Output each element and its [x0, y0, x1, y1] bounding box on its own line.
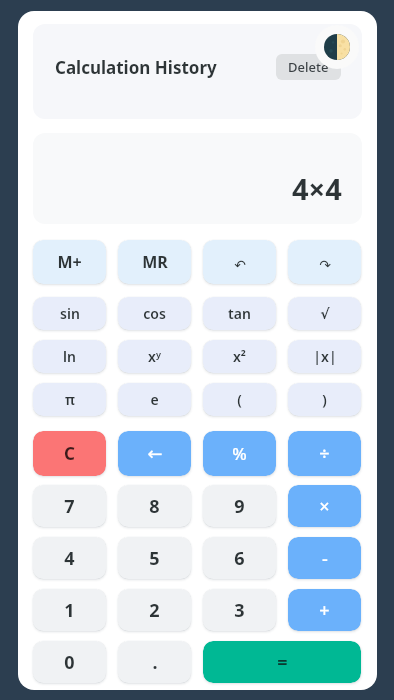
button[interactable]: 0	[33, 641, 106, 683]
staticText: MR	[142, 251, 168, 273]
staticText: ↷	[319, 257, 331, 273]
button[interactable]: 2	[118, 589, 191, 631]
staticText: π	[65, 390, 75, 409]
staticText: 3	[234, 598, 245, 623]
button[interactable]: Undo	[203, 240, 276, 284]
button[interactable]: 5	[118, 537, 191, 579]
button[interactable]: Redo	[288, 240, 361, 284]
button[interactable]: e	[118, 383, 191, 416]
button[interactable]: sin	[33, 297, 106, 330]
button[interactable]: MR	[118, 240, 191, 284]
button[interactable]: 3	[203, 589, 276, 631]
staticText: ÷	[319, 441, 330, 466]
button[interactable]: ←	[118, 431, 191, 476]
button[interactable]: %	[203, 431, 276, 476]
staticText: C	[64, 442, 75, 465]
staticText: =	[277, 650, 288, 675]
staticText: ←	[147, 443, 163, 464]
staticText: x²	[233, 347, 246, 366]
staticText: (	[237, 390, 242, 409]
staticText: Delete	[288, 58, 329, 76]
staticText: M+	[57, 251, 82, 273]
button[interactable]: -	[288, 537, 361, 579]
staticText: 9	[234, 494, 245, 519]
button[interactable]: Toggle theme	[315, 25, 359, 69]
staticText: -	[322, 546, 328, 571]
button[interactable]: x²	[203, 340, 276, 373]
staticText: √	[320, 306, 330, 322]
button[interactable]: π	[33, 383, 106, 416]
staticText: Calculation History	[55, 56, 217, 79]
button[interactable]: ÷	[288, 431, 361, 476]
button[interactable]: √	[288, 297, 361, 330]
staticText: %	[232, 442, 247, 465]
button[interactable]: C	[33, 431, 106, 476]
staticText: cos	[143, 304, 166, 323]
button[interactable]: 6	[203, 537, 276, 579]
button[interactable]: (	[203, 383, 276, 416]
button[interactable]: cos	[118, 297, 191, 330]
staticText: ln	[63, 347, 76, 366]
staticText: 7	[64, 494, 75, 519]
staticText: 2	[149, 598, 160, 623]
staticText: 4×4	[292, 169, 342, 208]
button[interactable]: ×	[288, 485, 361, 527]
button[interactable]: xʸ	[118, 340, 191, 373]
button[interactable]: 1	[33, 589, 106, 631]
staticText: ↶	[234, 257, 246, 273]
staticText: 6	[234, 546, 245, 571]
staticText: 5	[149, 546, 160, 571]
button[interactable]: 4	[33, 537, 106, 579]
button[interactable]: tan	[203, 297, 276, 330]
staticText: 4	[64, 546, 75, 571]
button[interactable]: 8	[118, 485, 191, 527]
button[interactable]: M+	[33, 240, 106, 284]
button[interactable]: Delete	[276, 54, 341, 80]
button[interactable]: ln	[33, 340, 106, 373]
staticText: 0	[64, 650, 75, 675]
button[interactable]: .	[118, 641, 191, 683]
staticText: tan	[228, 304, 251, 323]
staticText: |x|	[313, 347, 337, 366]
staticText: ×	[319, 494, 330, 519]
staticText: e	[150, 390, 159, 409]
button[interactable]: 9	[203, 485, 276, 527]
staticText: )	[322, 390, 327, 409]
staticText: sin	[60, 304, 80, 323]
button[interactable]: )	[288, 383, 361, 416]
staticText: 8	[149, 494, 160, 519]
button[interactable]: |x|	[288, 340, 361, 373]
staticText: 1	[64, 598, 75, 623]
staticText: +	[319, 598, 330, 623]
button[interactable]: +	[288, 589, 361, 631]
staticText: .	[152, 650, 158, 675]
staticText: xʸ	[148, 347, 161, 366]
button[interactable]: 7	[33, 485, 106, 527]
button[interactable]: =	[203, 641, 361, 683]
